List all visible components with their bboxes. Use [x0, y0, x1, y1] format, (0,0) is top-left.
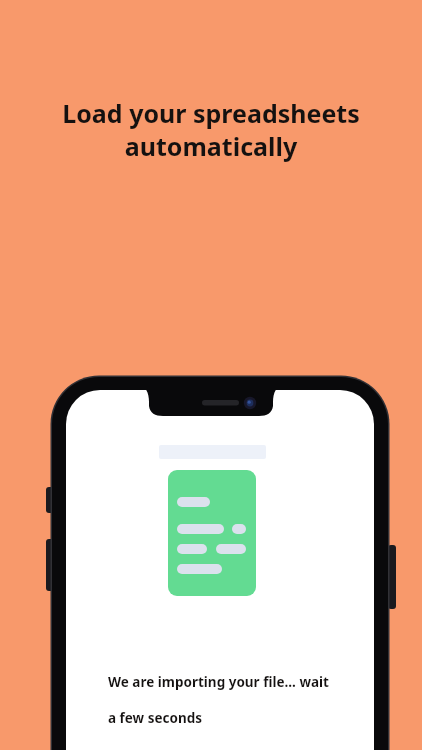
button[interactable]: Load your spreadsheets automatically	[0, 0, 422, 750]
staticText: We are importing your file... wait a few…	[108, 673, 348, 727]
staticText: Load your spreadsheets automatically	[16, 96, 406, 163]
